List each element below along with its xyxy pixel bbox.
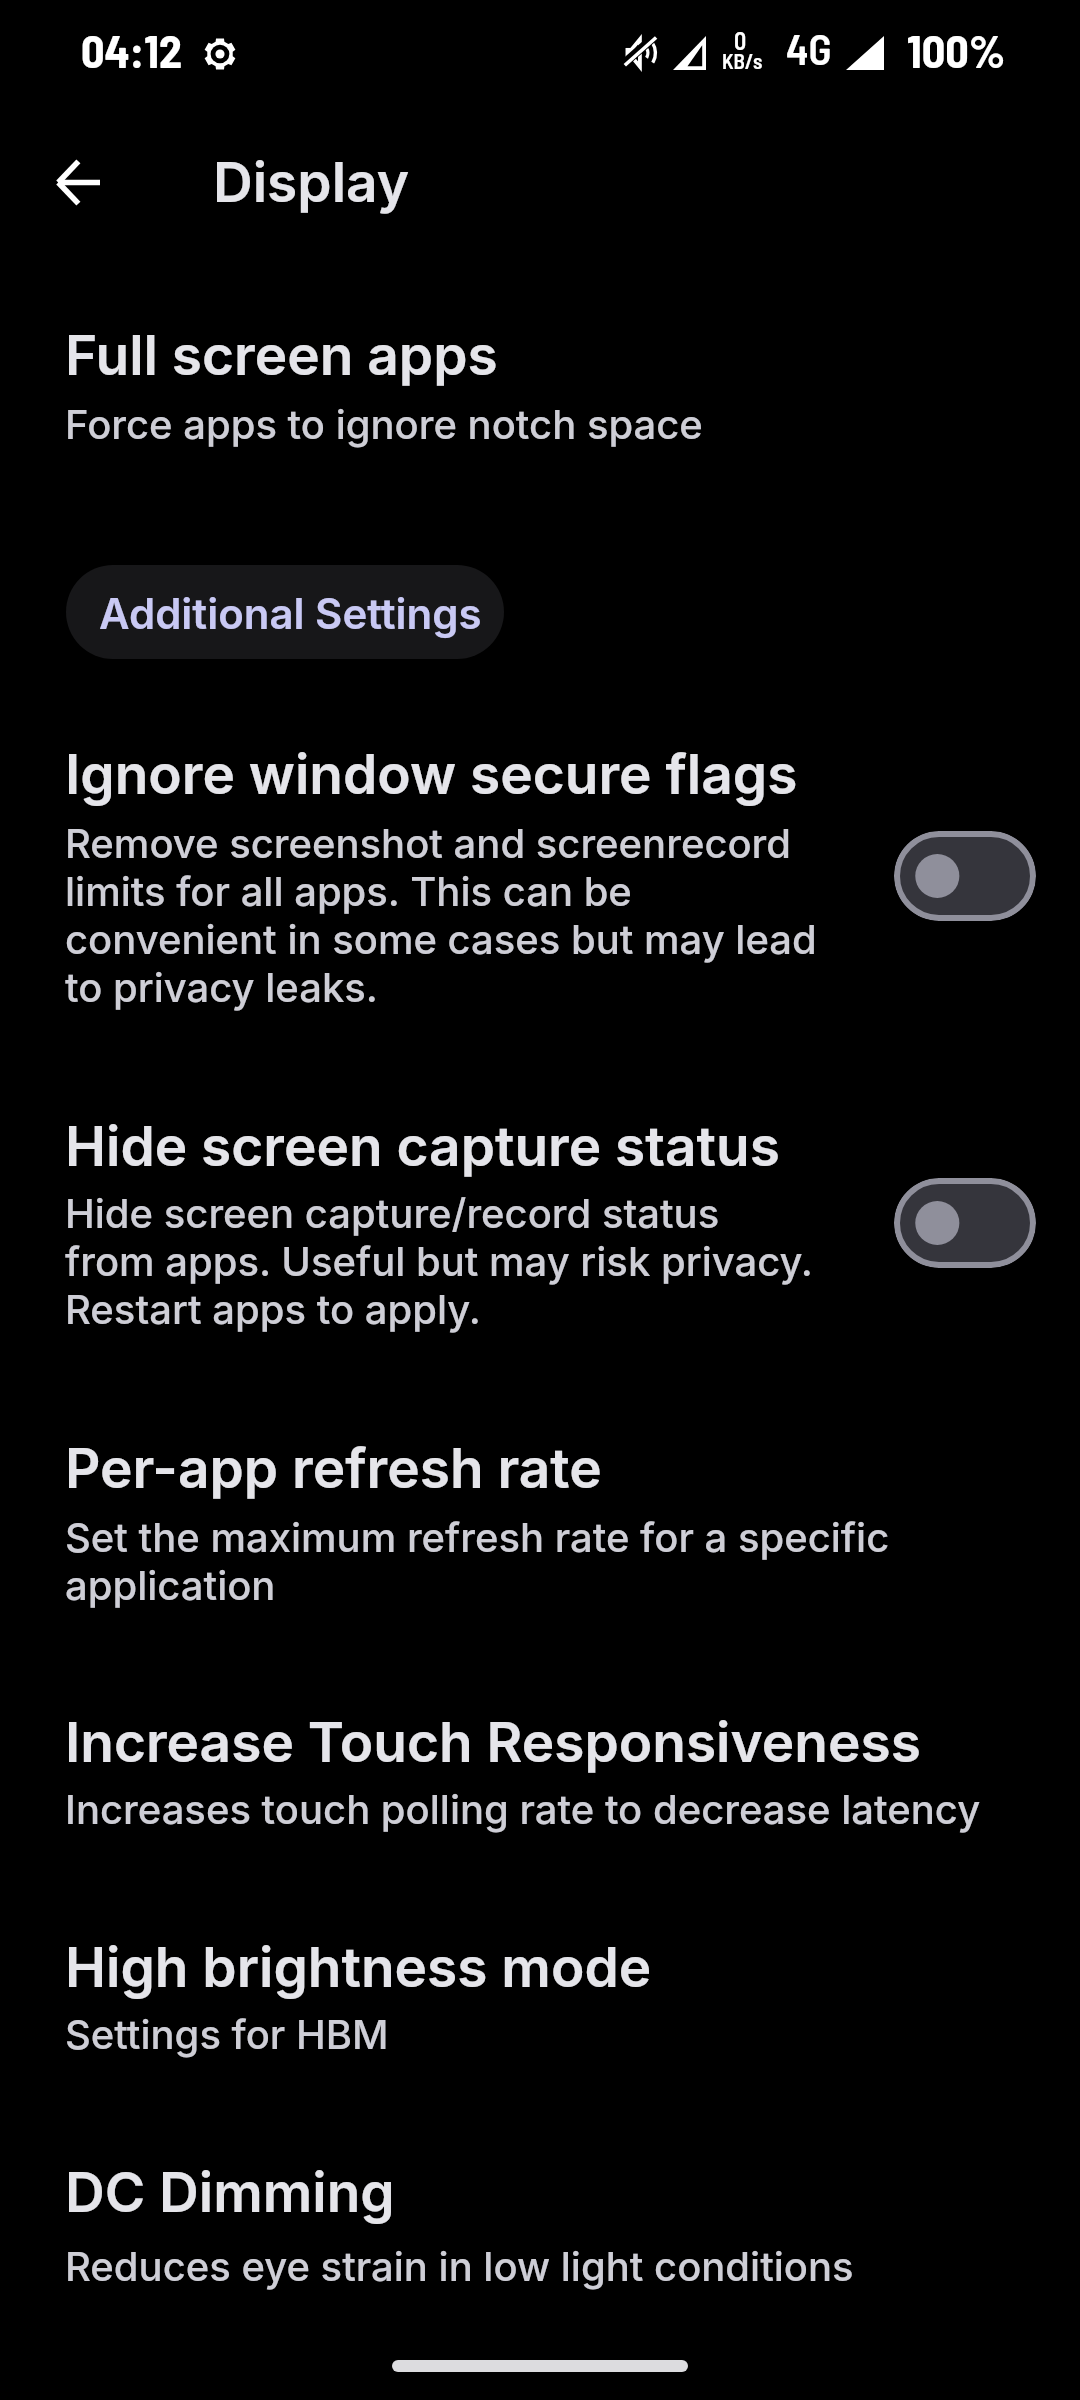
staticText: High brightness mode — [65, 1934, 652, 2000]
staticText: 0 — [734, 26, 747, 55]
button[interactable]: High brightness mode — [0, 1920, 1080, 2070]
staticText: Set the maximum refresh rate for a speci… — [65, 1514, 945, 1610]
staticText: Remove screenshot and screenrecord limit… — [65, 820, 818, 1012]
staticText: Full screen apps — [65, 322, 498, 388]
button[interactable]: Toggle setting — [894, 831, 1036, 921]
button[interactable]: Toggle setting — [894, 1178, 1036, 1268]
button[interactable]: Additional Settings — [66, 565, 504, 659]
button[interactable]: Ignore window secure flags — [0, 727, 1080, 1023]
button[interactable]: Navigate up — [31, 136, 123, 228]
staticText: Increases touch polling rate to decrease… — [65, 1786, 981, 1834]
button[interactable]: Per-app refresh rate — [0, 1421, 1080, 1621]
staticText: Per-app refresh rate — [65, 1435, 602, 1501]
staticText: 4G — [786, 22, 832, 74]
staticText: Hide screen capture status — [65, 1113, 780, 1179]
button[interactable]: Increase Touch Responsiveness — [0, 1695, 1080, 1845]
staticText: KB/s — [722, 48, 763, 73]
staticText: Hide screen capture/record status from a… — [65, 1190, 818, 1334]
staticText: Display — [213, 149, 410, 215]
staticText: Force apps to ignore notch space — [65, 401, 703, 449]
staticText: Settings for HBM — [65, 2011, 389, 2059]
staticText: Reduces eye strain in low light conditio… — [65, 2243, 854, 2291]
staticText: Additional Settings — [99, 587, 482, 639]
button[interactable]: DC Dimming — [0, 2145, 1080, 2302]
staticText: 100% — [907, 22, 1006, 77]
staticText: 04:12 — [81, 22, 182, 77]
staticText: Increase Touch Responsiveness — [65, 1709, 921, 1775]
staticText: Ignore window secure flags — [65, 741, 798, 807]
button[interactable]: Hide screen capture status — [0, 1099, 1080, 1345]
button[interactable]: Full screen apps — [0, 308, 1080, 460]
staticText: DC Dimming — [65, 2159, 395, 2225]
